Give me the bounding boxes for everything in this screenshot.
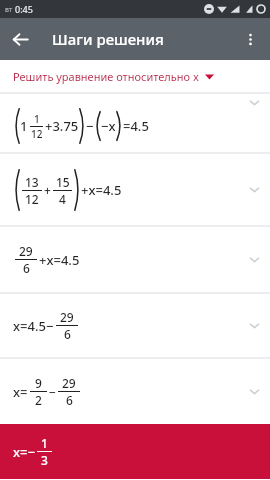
staticText: 6	[64, 326, 71, 342]
staticText: 29	[60, 309, 74, 325]
staticText: x=	[13, 383, 28, 401]
staticText: 3	[41, 452, 48, 468]
staticText: 1	[20, 117, 28, 135]
button[interactable]: 1	[0, 94, 270, 152]
button[interactable]: x=	[0, 359, 270, 424]
staticText: 6	[23, 260, 30, 276]
staticText: 29	[62, 375, 76, 391]
button[interactable]: Назад	[0, 19, 40, 59]
staticText: =4.5	[123, 117, 149, 135]
staticText: −	[86, 117, 94, 135]
staticText: 4	[59, 191, 66, 207]
staticText: +x=4.5	[39, 251, 80, 269]
staticText: 12	[31, 127, 43, 141]
staticText: 0:45	[15, 3, 33, 15]
button[interactable]: Ещё	[230, 19, 270, 59]
button[interactable]: Решить уравнение относительно x	[0, 60, 270, 92]
staticText: 9	[35, 375, 42, 391]
staticText: Решить уравнение относительно x	[13, 69, 199, 84]
staticText: +3.75	[45, 117, 79, 135]
staticText: 13	[25, 174, 39, 190]
button[interactable]: x=4.5−	[0, 294, 270, 357]
staticText: x=4.5−	[13, 317, 54, 335]
staticText: 29	[19, 243, 33, 259]
staticText: 12	[25, 191, 39, 207]
button[interactable]: x=−	[0, 424, 270, 479]
staticText: +x=4.5	[81, 181, 122, 199]
button[interactable]: 13	[0, 154, 270, 225]
staticText: 6	[66, 392, 73, 408]
staticText: −x	[101, 117, 116, 135]
staticText: вт	[5, 5, 13, 15]
staticText: Шаги решения	[52, 29, 164, 49]
staticText: 15	[56, 174, 70, 190]
staticText: 2	[35, 392, 42, 408]
staticText: +	[44, 182, 51, 198]
staticText: x=−	[13, 443, 35, 461]
staticText: −	[49, 384, 56, 400]
staticText: 1	[41, 435, 48, 451]
button[interactable]: 29	[0, 227, 270, 292]
staticText: 1	[34, 112, 40, 126]
